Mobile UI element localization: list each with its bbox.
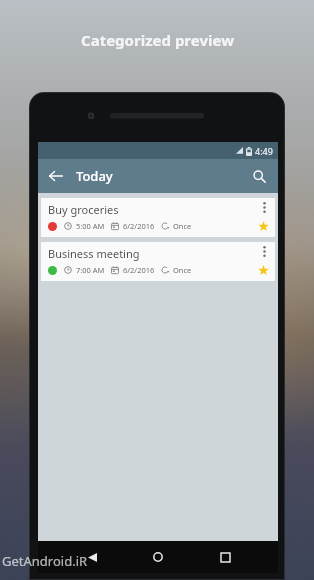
- button[interactable]: Recent apps: [212, 544, 238, 570]
- button[interactable]: More options: [255, 242, 273, 260]
- staticText: 5:00 AM: [76, 221, 105, 231]
- staticText: Buy groceries: [48, 202, 119, 217]
- button[interactable]: More options: [255, 198, 273, 216]
- staticText: 4:49: [255, 145, 273, 157]
- staticText: 6/2/2016: [123, 265, 155, 275]
- staticText: Today: [76, 167, 113, 185]
- staticText: 6/2/2016: [123, 221, 155, 231]
- button[interactable]: Search: [245, 162, 273, 190]
- staticText: Once: [173, 221, 192, 231]
- staticText: Once: [173, 265, 192, 275]
- staticText: 7:00 AM: [76, 265, 105, 275]
- staticText: Categorized preview: [81, 30, 234, 50]
- button[interactable]: Favorite: [255, 218, 271, 234]
- button[interactable]: Buy groceries: [41, 198, 275, 237]
- button[interactable]: Favorite: [255, 262, 271, 278]
- staticText: GetAndroid.iR: [2, 552, 88, 570]
- button[interactable]: Back: [42, 162, 70, 190]
- button[interactable]: Back: [79, 544, 105, 570]
- button[interactable]: Home: [145, 544, 171, 570]
- button[interactable]: Business meeting: [41, 242, 275, 281]
- staticText: Business meeting: [48, 246, 140, 261]
